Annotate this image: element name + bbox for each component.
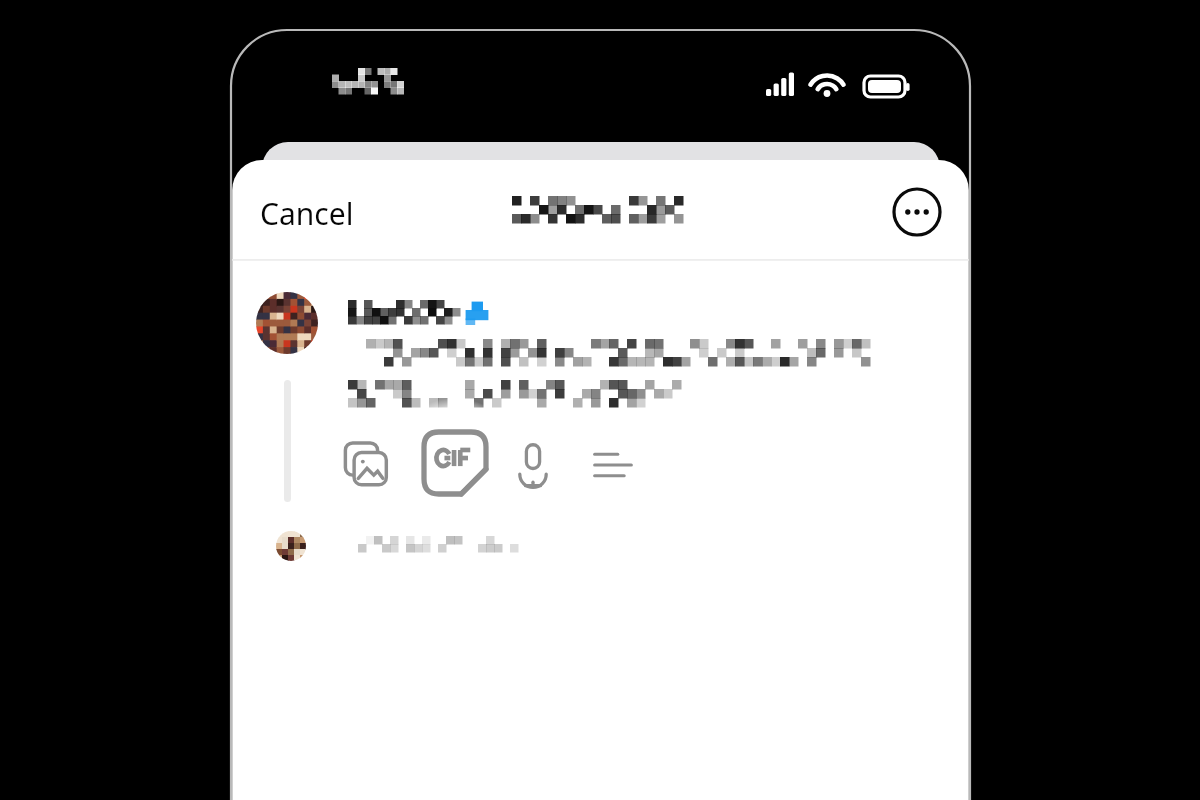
button[interactable]: Add GIF xyxy=(421,429,489,497)
button[interactable]: Cancel xyxy=(248,188,366,239)
button[interactable]: Record audio xyxy=(510,441,556,487)
button[interactable]: Add poll xyxy=(590,443,634,487)
staticText: Cancel xyxy=(260,193,354,234)
button[interactable]: More options xyxy=(892,187,942,237)
button[interactable]: Add to thread xyxy=(262,524,862,572)
button[interactable]: Add photo xyxy=(343,441,391,489)
